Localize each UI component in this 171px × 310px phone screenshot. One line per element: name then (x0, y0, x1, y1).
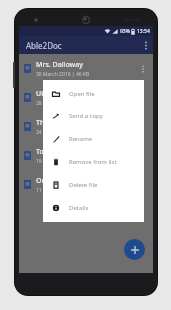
staticText: Rename (69, 135, 93, 143)
button[interactable]: Details (43, 196, 144, 219)
button[interactable]: Orlando (19, 170, 153, 199)
staticText: Open file (69, 90, 95, 98)
staticText: Delete file (69, 181, 98, 189)
staticText: 30 March 2016 | 46 KB (36, 71, 90, 78)
button[interactable]: Delete file (43, 173, 144, 196)
staticText: Orlando (36, 176, 64, 186)
button[interactable]: Add document (124, 239, 145, 260)
staticText: 24 March 2016 | 38 KB (36, 129, 90, 136)
staticText: The Waves (36, 118, 72, 128)
staticText: 11 March 2016 | 59 KB (36, 187, 90, 194)
staticText: 93% (120, 28, 130, 35)
staticText: Ulysses (36, 89, 61, 99)
staticText: Send a copy (69, 112, 103, 120)
button[interactable]: Send a copy (43, 105, 144, 127)
button[interactable]: Ulysses (19, 83, 153, 112)
button[interactable]: Open file (43, 83, 144, 105)
button[interactable]: Item options (138, 146, 148, 166)
button[interactable]: Item options (138, 117, 148, 137)
staticText: To the Lighthouse (36, 147, 96, 157)
staticText: Able2Doc (26, 40, 62, 51)
button[interactable]: Item options (138, 59, 148, 79)
button[interactable]: Mrs. Dalloway (19, 54, 153, 83)
staticText: Details (69, 204, 89, 212)
staticText: 19 March 2016 | 71 KB (36, 158, 90, 165)
staticText: Mrs. Dalloway (36, 60, 83, 70)
button[interactable]: Item options (138, 175, 148, 195)
button[interactable]: Rename (43, 127, 144, 150)
staticText: 13:54 (137, 28, 150, 35)
button[interactable]: Item options (138, 88, 148, 108)
staticText: 28 March 2016 | 112 KB (36, 100, 93, 107)
staticText: Remove from list (69, 158, 117, 166)
button[interactable]: To the Lighthouse (19, 141, 153, 170)
button[interactable]: The Waves (19, 112, 153, 141)
button[interactable]: More options (139, 36, 153, 54)
button[interactable]: Remove from list (43, 150, 144, 173)
